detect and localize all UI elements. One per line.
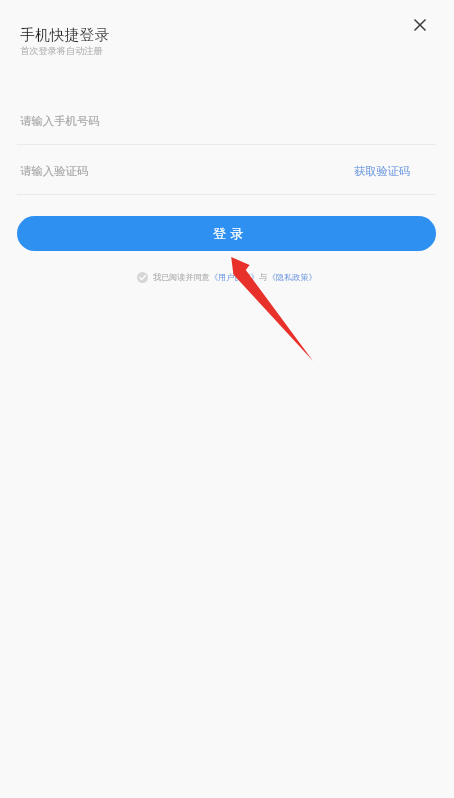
staticText: 与 <box>259 272 268 282</box>
staticText: 获取验证码 <box>354 164 410 178</box>
staticText: 我已阅读并同意 <box>153 272 210 282</box>
button[interactable]: 登录 <box>17 216 436 251</box>
staticText: 请输入手机号码 <box>20 114 100 128</box>
staticText: 首次登录将自动注册 <box>20 45 103 57</box>
staticText: 登录 <box>213 225 248 242</box>
button[interactable]: 《隐私政策》 <box>268 272 317 282</box>
button[interactable]: 《用户协议》 <box>210 272 259 282</box>
staticText: 手机快捷登录 <box>20 26 110 45</box>
button[interactable]: 获取验证码 <box>348 158 416 184</box>
staticText: 请输入验证码 <box>20 164 89 178</box>
button[interactable]: Close <box>402 7 438 43</box>
button[interactable]: 请输入手机号码 <box>0 104 454 137</box>
button[interactable]: Agree to terms <box>137 272 148 283</box>
